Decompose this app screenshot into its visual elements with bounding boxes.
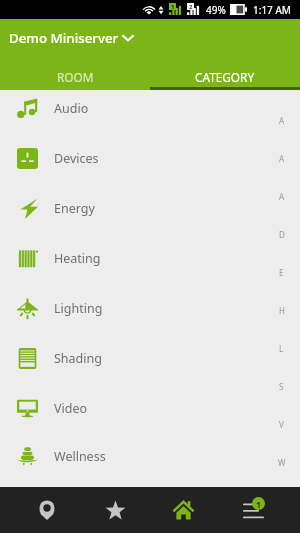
button[interactable]: H	[263, 291, 300, 329]
staticText: Energy	[54, 200, 95, 217]
button[interactable]: Devices	[0, 133, 300, 183]
staticText: E	[279, 267, 284, 278]
staticText: Heating	[54, 250, 101, 267]
button[interactable]: Tasks, 1 new	[218, 487, 287, 533]
staticText: W	[278, 457, 286, 468]
button[interactable]: CATEGORY	[150, 57, 300, 90]
staticText: Lighting	[54, 300, 103, 317]
staticText: D	[279, 229, 285, 240]
staticText: A	[279, 115, 285, 126]
staticText: S	[279, 381, 284, 392]
button[interactable]: ROOM	[0, 57, 150, 90]
staticText: V	[279, 419, 284, 430]
button[interactable]: Heating	[0, 233, 300, 283]
button[interactable]: D	[263, 215, 300, 253]
button[interactable]: Lighting	[0, 283, 300, 333]
staticText: 49%	[206, 3, 226, 17]
staticText: CATEGORY	[195, 69, 255, 85]
button[interactable]: Wellness	[0, 433, 300, 480]
staticText: ROOM	[57, 69, 94, 85]
staticText: 1	[256, 498, 262, 510]
staticText: Shading	[54, 350, 102, 367]
button[interactable]: L	[263, 329, 300, 367]
button[interactable]: A	[263, 139, 300, 177]
button[interactable]: V	[263, 405, 300, 443]
button[interactable]: Shading	[0, 333, 300, 383]
button[interactable]: Places	[13, 487, 81, 533]
staticText: A	[279, 191, 285, 202]
button[interactable]: Favorites	[81, 487, 149, 533]
staticText: H	[279, 305, 285, 316]
button[interactable]: Demo Miniserver	[0, 19, 300, 57]
staticText: 2	[189, 3, 193, 10]
staticText: 1:17 AM	[253, 3, 291, 17]
staticText: 1	[171, 3, 175, 10]
button[interactable]: A	[263, 101, 300, 139]
button[interactable]: A	[263, 177, 300, 215]
button[interactable]: Video	[0, 383, 300, 433]
staticText: A	[279, 153, 285, 164]
button[interactable]: Audio	[0, 83, 300, 133]
staticText: Devices	[54, 150, 99, 167]
button[interactable]: Home	[149, 487, 218, 533]
button[interactable]: W	[263, 443, 300, 481]
button[interactable]: S	[263, 367, 300, 405]
staticText: L	[279, 343, 284, 354]
staticText: Video	[54, 400, 88, 417]
button[interactable]: E	[263, 253, 300, 291]
staticText: Demo Miniserver	[9, 29, 119, 47]
staticText: Audio	[54, 100, 89, 117]
button[interactable]: Energy	[0, 183, 300, 233]
staticText: Wellness	[54, 448, 106, 465]
